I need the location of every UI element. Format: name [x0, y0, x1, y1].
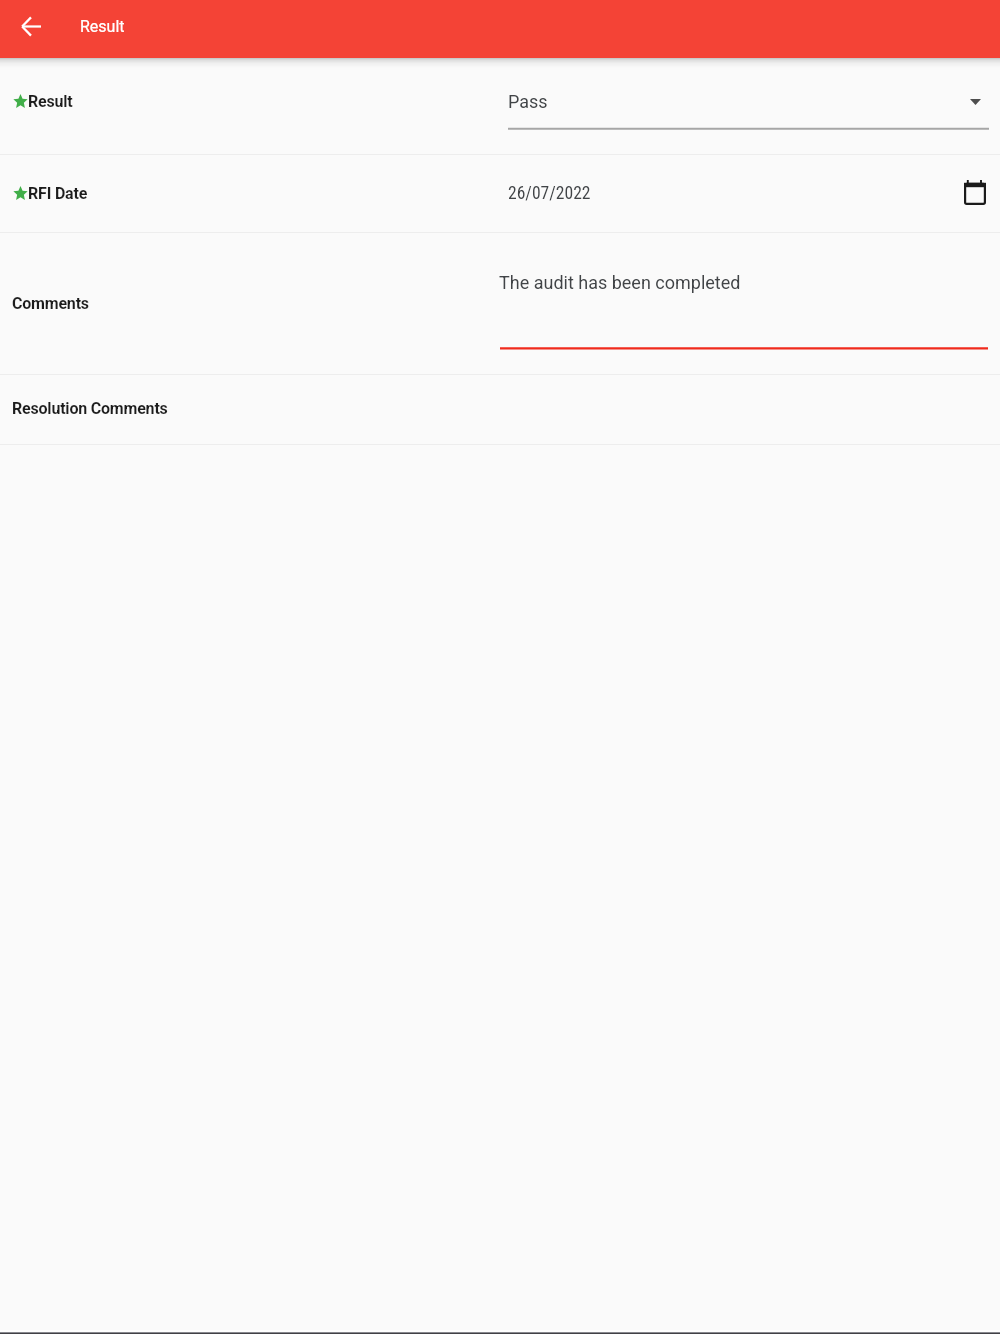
button[interactable]: Pick date: [956, 173, 994, 211]
staticText: Result: [28, 92, 73, 111]
button[interactable]: Result: [0, 58, 1000, 154]
button[interactable]: Resolution Comments: [0, 375, 1000, 444]
button[interactable]: RFI Date: [0, 155, 1000, 232]
staticText: 26/07/2022: [508, 183, 591, 204]
staticText: Comments: [12, 294, 89, 313]
staticText: Pass: [508, 91, 548, 112]
staticText: RFI Date: [28, 184, 88, 203]
button[interactable]: Comments: [0, 233, 1000, 374]
staticText: Resolution Comments: [12, 399, 168, 418]
button[interactable]: Back: [11, 7, 50, 46]
staticText: Result: [80, 17, 125, 36]
staticText: The audit has been completed: [499, 272, 741, 293]
